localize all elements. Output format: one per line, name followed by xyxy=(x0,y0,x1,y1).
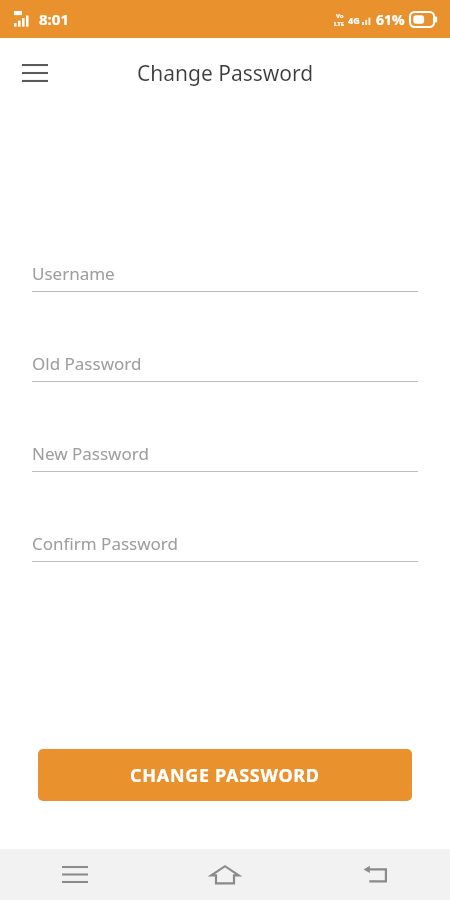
button[interactable]: Username xyxy=(32,258,418,292)
staticText: CHANGE PASSWORD xyxy=(130,763,320,788)
staticText: 4G xyxy=(348,14,360,26)
button[interactable]: Recent apps xyxy=(0,849,150,900)
staticText: Change Password xyxy=(137,59,314,88)
button[interactable]: Confirm Password xyxy=(32,528,418,562)
staticText: Vo xyxy=(336,12,344,20)
staticText: 8:01 xyxy=(39,9,69,29)
button[interactable]: Old Password xyxy=(32,348,418,382)
button[interactable]: Back xyxy=(300,849,450,900)
button[interactable]: New Password xyxy=(32,438,418,472)
staticText: 61% xyxy=(376,10,405,29)
button[interactable]: Open navigation menu xyxy=(10,48,60,98)
staticText: Old Password xyxy=(32,352,142,375)
staticText: New Password xyxy=(32,442,149,465)
button[interactable]: Home xyxy=(150,849,300,900)
staticText: LTE xyxy=(334,20,345,28)
staticText: Username xyxy=(32,262,115,285)
button[interactable]: CHANGE PASSWORD xyxy=(38,749,412,801)
staticText: Confirm Password xyxy=(32,532,178,555)
